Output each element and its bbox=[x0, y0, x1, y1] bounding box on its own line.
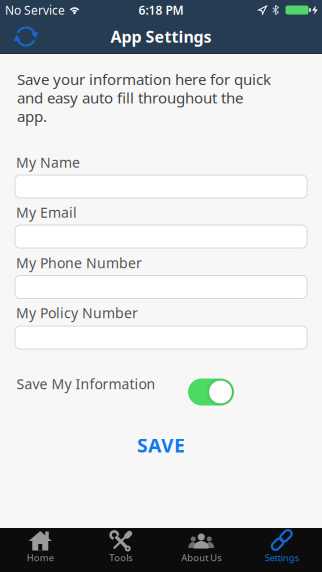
button[interactable]: Home bbox=[0, 528, 80, 572]
button[interactable]: SAVE bbox=[0, 435, 322, 455]
staticText: SAVE bbox=[137, 432, 185, 458]
staticText: 6:18 PM bbox=[138, 2, 183, 18]
staticText: App Settings bbox=[110, 26, 211, 47]
staticText: My Phone Number bbox=[16, 253, 142, 272]
button[interactable]: My Name bbox=[15, 175, 307, 198]
staticText: Settings bbox=[265, 551, 299, 564]
staticText: Save My Information bbox=[16, 374, 155, 393]
button[interactable]: About Us bbox=[161, 528, 241, 572]
staticText: Save your information here for quick and… bbox=[17, 70, 271, 125]
button[interactable]: Save My Information bbox=[188, 378, 234, 405]
button[interactable]: My Policy Number bbox=[15, 326, 307, 349]
staticText: Home bbox=[27, 551, 54, 564]
staticText: My Policy Number bbox=[16, 303, 138, 322]
staticText: About Us bbox=[181, 551, 221, 564]
staticText: Tools bbox=[109, 551, 132, 564]
button[interactable]: Tools bbox=[80, 528, 161, 572]
staticText: My Name bbox=[16, 153, 80, 172]
staticText: No Service bbox=[5, 2, 65, 18]
button[interactable]: Refresh bbox=[13, 23, 39, 49]
staticText: My Email bbox=[16, 203, 77, 222]
button[interactable]: Settings bbox=[241, 528, 322, 572]
button[interactable]: My Email bbox=[15, 225, 307, 248]
